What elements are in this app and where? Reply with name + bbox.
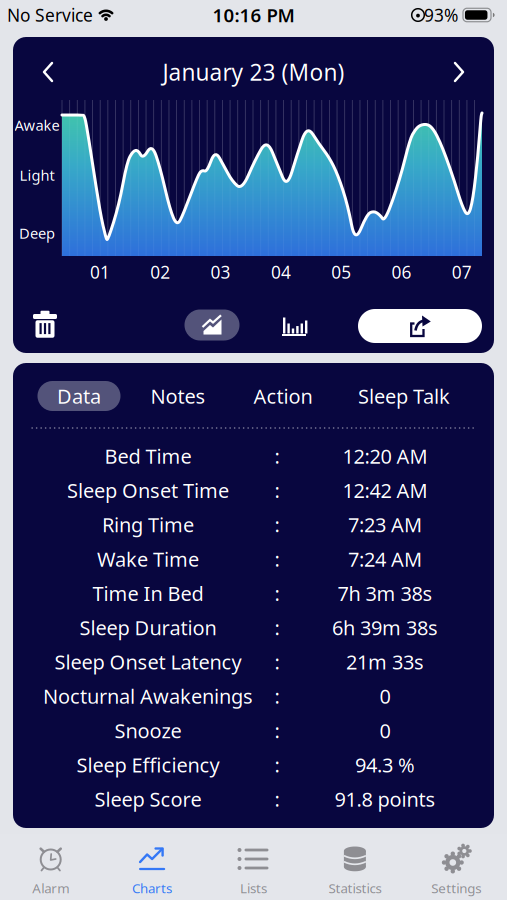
button[interactable]: Lists [203, 834, 303, 898]
staticText: : [274, 614, 279, 641]
staticText: 10:16 PM [212, 3, 294, 27]
staticText: 06 [391, 260, 411, 283]
staticText: Nocturnal Awakenings [43, 683, 253, 709]
staticText: 7:24 AM [348, 546, 422, 572]
staticText: 04 [271, 260, 291, 283]
staticText: Sleep Talk [358, 383, 450, 409]
staticText: 12:20 AM [342, 443, 427, 469]
staticText: Lists [240, 879, 267, 897]
staticText: Time In Bed [92, 580, 203, 606]
staticText: Wake Time [97, 546, 199, 572]
staticText: : [274, 683, 279, 709]
staticText: Ring Time [102, 511, 194, 538]
button[interactable]: Notes [138, 381, 218, 411]
staticText: 91.8 points [334, 786, 435, 812]
button[interactable]: Action [243, 381, 323, 411]
staticText: 07 [452, 260, 472, 283]
staticText: : [274, 511, 279, 538]
staticText: Sleep Duration [79, 614, 216, 641]
staticText: 0 [379, 683, 390, 709]
staticText: 05 [331, 260, 351, 283]
staticText: Sleep Onset Time [67, 477, 229, 504]
staticText: : [274, 546, 279, 572]
staticText: 12:42 AM [342, 477, 427, 504]
staticText: : [274, 648, 279, 675]
staticText: January 23 (Mon) [162, 57, 344, 87]
button[interactable] [41, 61, 55, 83]
button[interactable] [33, 310, 57, 338]
button[interactable]: Statistics [305, 834, 405, 898]
staticText: Sleep Score [94, 786, 201, 812]
staticText: Snooze [114, 717, 181, 744]
button[interactable] [184, 309, 239, 340]
staticText: 7h 3m 38s [337, 580, 432, 606]
staticText: 02 [150, 260, 170, 283]
staticText: : [274, 751, 279, 778]
button[interactable]: Settings [406, 834, 506, 898]
staticText: Notes [150, 383, 205, 409]
button[interactable] [358, 309, 482, 343]
staticText: Data [57, 383, 101, 409]
button[interactable] [452, 61, 466, 83]
staticText: Bed Time [104, 443, 191, 469]
staticText: Sleep Onset Latency [54, 648, 241, 675]
staticText: 93% [424, 3, 458, 26]
staticText: : [274, 786, 279, 812]
staticText: : [274, 443, 279, 469]
staticText: 7:23 AM [348, 511, 422, 538]
staticText: Action [253, 383, 312, 409]
staticText: Settings [431, 879, 481, 897]
staticText: Alarm [32, 879, 69, 897]
staticText: 01 [90, 260, 110, 283]
button[interactable] [281, 313, 307, 337]
staticText: : [274, 477, 279, 504]
staticText: 03 [211, 260, 231, 283]
button[interactable]: Charts [102, 834, 202, 898]
staticText: Light [19, 165, 54, 185]
staticText: 6h 39m 38s [332, 614, 438, 641]
button[interactable]: Sleep Talk [354, 381, 454, 411]
staticText: 94.3 % [355, 751, 415, 778]
button[interactable]: Data [37, 381, 120, 411]
staticText: No Service [7, 3, 93, 26]
staticText: Deep [19, 223, 55, 243]
staticText: 0 [379, 717, 390, 744]
staticText: Awake [14, 115, 59, 135]
staticText: Charts [132, 879, 172, 897]
staticText: : [274, 717, 279, 744]
staticText: Statistics [328, 879, 381, 897]
button[interactable]: Alarm [1, 834, 101, 898]
staticText: 21m 33s [346, 648, 424, 675]
staticText: Sleep Efficiency [76, 751, 219, 778]
staticText: : [274, 580, 279, 606]
